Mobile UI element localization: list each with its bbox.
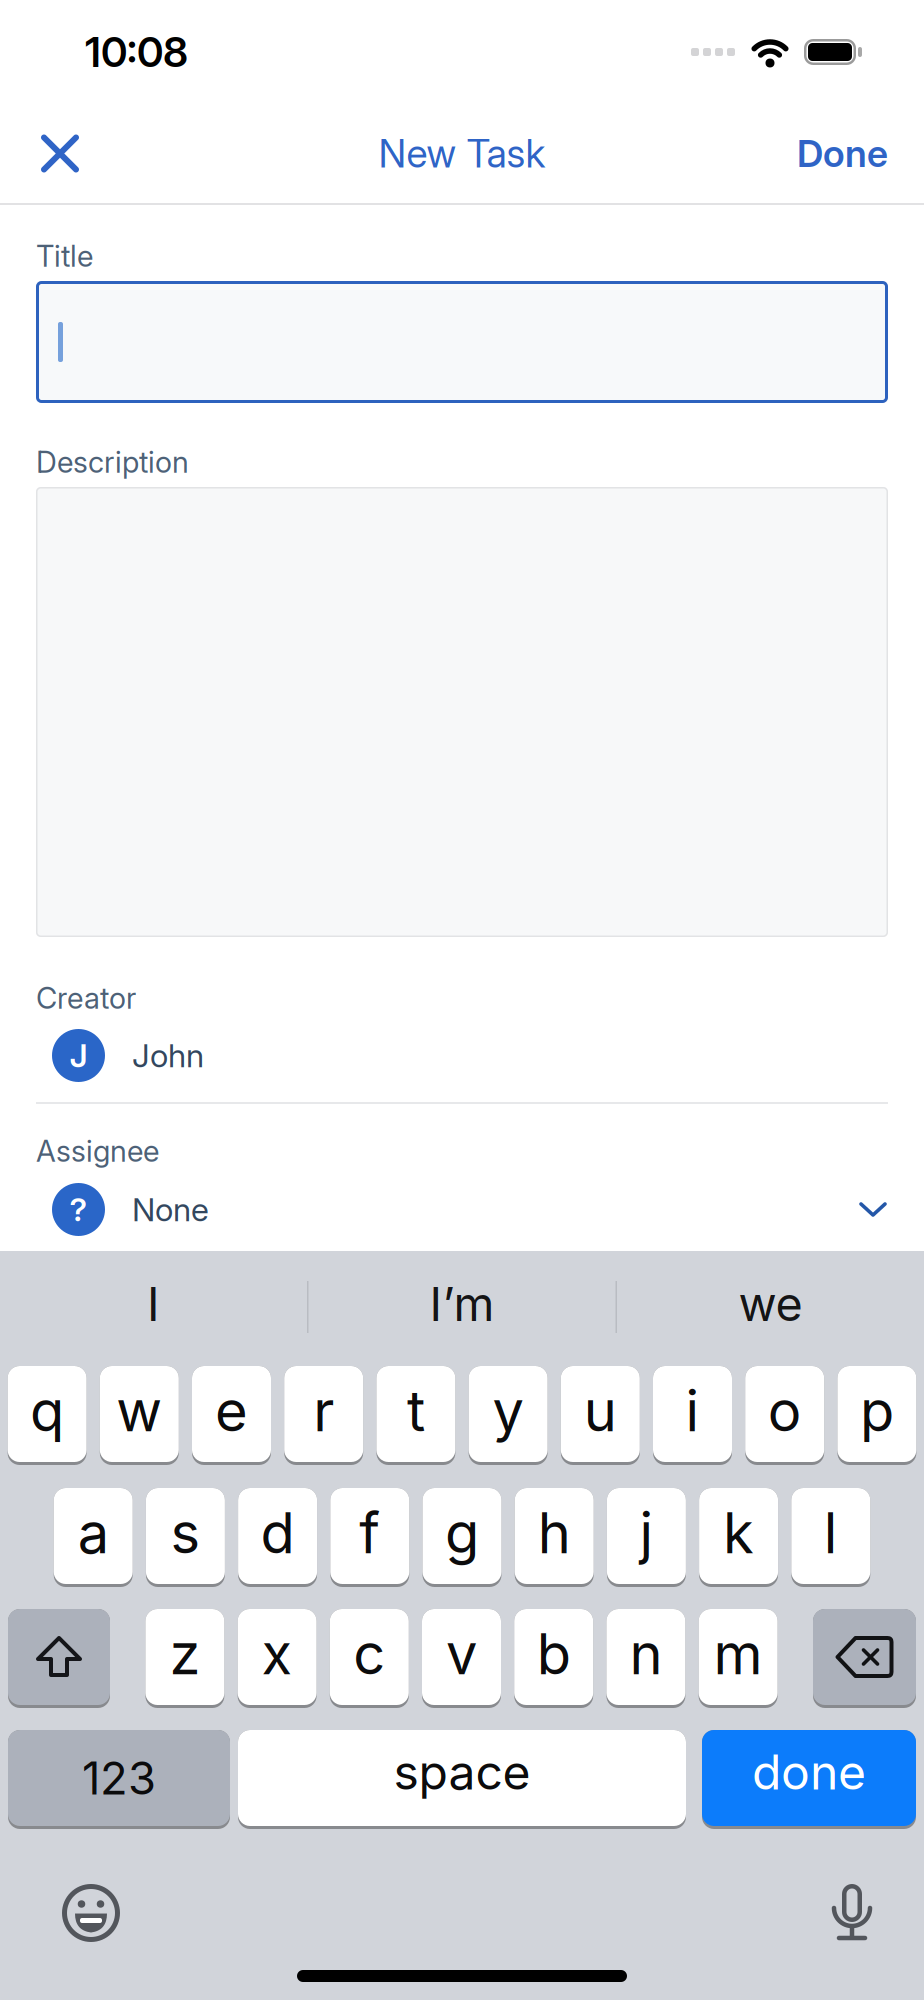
staticText: o xyxy=(768,1377,802,1445)
button[interactable]: I’m xyxy=(308,1279,615,1335)
button[interactable]: t xyxy=(376,1366,455,1465)
staticText: y xyxy=(493,1377,524,1445)
button[interactable]: l xyxy=(791,1488,870,1587)
button[interactable]: e xyxy=(192,1366,271,1465)
staticText: Done xyxy=(797,131,888,176)
button[interactable]: k xyxy=(699,1488,778,1587)
button[interactable]: b xyxy=(514,1609,593,1708)
button[interactable]: i xyxy=(653,1366,732,1465)
button[interactable]: v xyxy=(422,1609,501,1708)
staticText: J xyxy=(69,1036,87,1075)
staticText: v xyxy=(446,1620,477,1688)
staticText: j xyxy=(639,1499,653,1567)
button[interactable]: space xyxy=(238,1730,686,1829)
button[interactable]: y xyxy=(469,1366,548,1465)
staticText: d xyxy=(261,1499,295,1567)
staticText: 123 xyxy=(82,1751,156,1805)
button[interactable]: m xyxy=(699,1609,778,1708)
staticText: m xyxy=(714,1620,763,1688)
button[interactable]: w xyxy=(100,1366,179,1465)
staticText: e xyxy=(215,1377,248,1445)
button[interactable]: Done xyxy=(797,131,924,176)
button[interactable]: d xyxy=(238,1488,317,1587)
button[interactable]: q xyxy=(8,1366,87,1465)
button[interactable]: h xyxy=(515,1488,594,1587)
staticText: Title xyxy=(36,238,93,274)
staticText: g xyxy=(445,1499,479,1567)
staticText: k xyxy=(723,1499,754,1567)
button[interactable]: a xyxy=(54,1488,133,1587)
button[interactable]: s xyxy=(146,1488,225,1587)
button[interactable]: n xyxy=(606,1609,685,1708)
button[interactable]: c xyxy=(330,1609,409,1708)
button[interactable]: x xyxy=(238,1609,317,1708)
button[interactable]: g xyxy=(422,1488,501,1587)
staticText: done xyxy=(752,1743,866,1801)
staticText: c xyxy=(353,1620,385,1688)
staticText: t xyxy=(407,1377,425,1445)
staticText: p xyxy=(860,1377,894,1445)
staticText: z xyxy=(169,1620,200,1688)
staticText: None xyxy=(132,1190,209,1229)
staticText: New Task xyxy=(378,130,545,177)
staticText: h xyxy=(538,1499,571,1567)
staticText: I xyxy=(147,1276,160,1332)
staticText: I’m xyxy=(429,1276,494,1332)
staticText: b xyxy=(537,1620,571,1688)
button[interactable] xyxy=(0,135,78,171)
button[interactable]: p xyxy=(837,1366,916,1465)
staticText: 10:08 xyxy=(85,27,188,77)
staticText: x xyxy=(262,1620,293,1688)
staticText: Assignee xyxy=(36,1133,159,1169)
button[interactable]: I xyxy=(0,1279,307,1335)
staticText: a xyxy=(78,1499,109,1567)
button[interactable] xyxy=(832,1884,872,1942)
button[interactable]: done xyxy=(702,1730,916,1829)
staticText: f xyxy=(359,1499,380,1567)
staticText: Creator xyxy=(36,980,136,1016)
staticText: John xyxy=(132,1036,204,1075)
staticText: we xyxy=(738,1276,802,1332)
button[interactable]: ? xyxy=(36,1183,888,1236)
staticText: n xyxy=(629,1620,662,1688)
button[interactable]: 123 xyxy=(8,1730,230,1829)
staticText: Description xyxy=(36,444,189,480)
button[interactable]: u xyxy=(561,1366,640,1465)
button[interactable]: z xyxy=(145,1609,224,1708)
button[interactable]: o xyxy=(745,1366,824,1465)
staticText: q xyxy=(30,1377,64,1445)
button[interactable] xyxy=(36,281,888,403)
button[interactable]: f xyxy=(330,1488,409,1587)
button[interactable] xyxy=(8,1609,110,1708)
staticText: s xyxy=(170,1499,200,1567)
button[interactable]: we xyxy=(617,1279,924,1335)
staticText: w xyxy=(116,1377,162,1445)
button[interactable] xyxy=(62,1884,120,1942)
button[interactable] xyxy=(813,1609,916,1708)
staticText: u xyxy=(584,1377,617,1445)
button[interactable]: r xyxy=(284,1366,363,1465)
staticText: space xyxy=(393,1743,530,1801)
staticText: r xyxy=(313,1377,334,1445)
staticText: l xyxy=(824,1499,838,1567)
staticText: ? xyxy=(69,1190,87,1229)
button[interactable]: j xyxy=(607,1488,686,1587)
staticText: i xyxy=(685,1377,699,1445)
